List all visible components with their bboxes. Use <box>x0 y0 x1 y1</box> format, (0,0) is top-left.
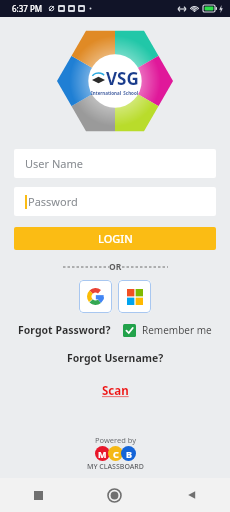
staticText: Remember me <box>142 323 212 337</box>
button[interactable]: Recents <box>0 478 76 512</box>
staticText: B <box>126 448 132 460</box>
button[interactable]: Password <box>14 187 216 216</box>
staticText: MY CLASSBOARD <box>87 462 144 472</box>
button[interactable]: LOGIN <box>14 227 216 250</box>
staticText: User Name <box>25 156 83 171</box>
button[interactable]: Sign in with Google <box>79 280 112 313</box>
staticText: M <box>98 448 107 460</box>
button[interactable]: Back <box>153 478 230 512</box>
staticText: LOGIN <box>98 231 133 246</box>
button[interactable]: Forgot Username? <box>67 351 164 365</box>
button[interactable]: User Name <box>14 149 216 178</box>
staticText: VSG <box>106 67 139 90</box>
button[interactable]: Forgot Password? <box>18 323 111 337</box>
staticText: C <box>113 448 119 460</box>
button[interactable]: Powered by <box>87 435 144 472</box>
staticText: 6:37 PM <box>12 3 43 14</box>
staticText: OR <box>109 261 122 273</box>
button[interactable]: Home <box>76 478 153 512</box>
staticText: Powered by <box>95 435 137 445</box>
button[interactable]: Sign in with Microsoft <box>118 280 151 313</box>
staticText: International School <box>91 90 139 96</box>
button[interactable]: Remember me <box>123 323 212 337</box>
staticText: Password <box>28 194 78 209</box>
button[interactable]: Scan <box>102 383 129 399</box>
